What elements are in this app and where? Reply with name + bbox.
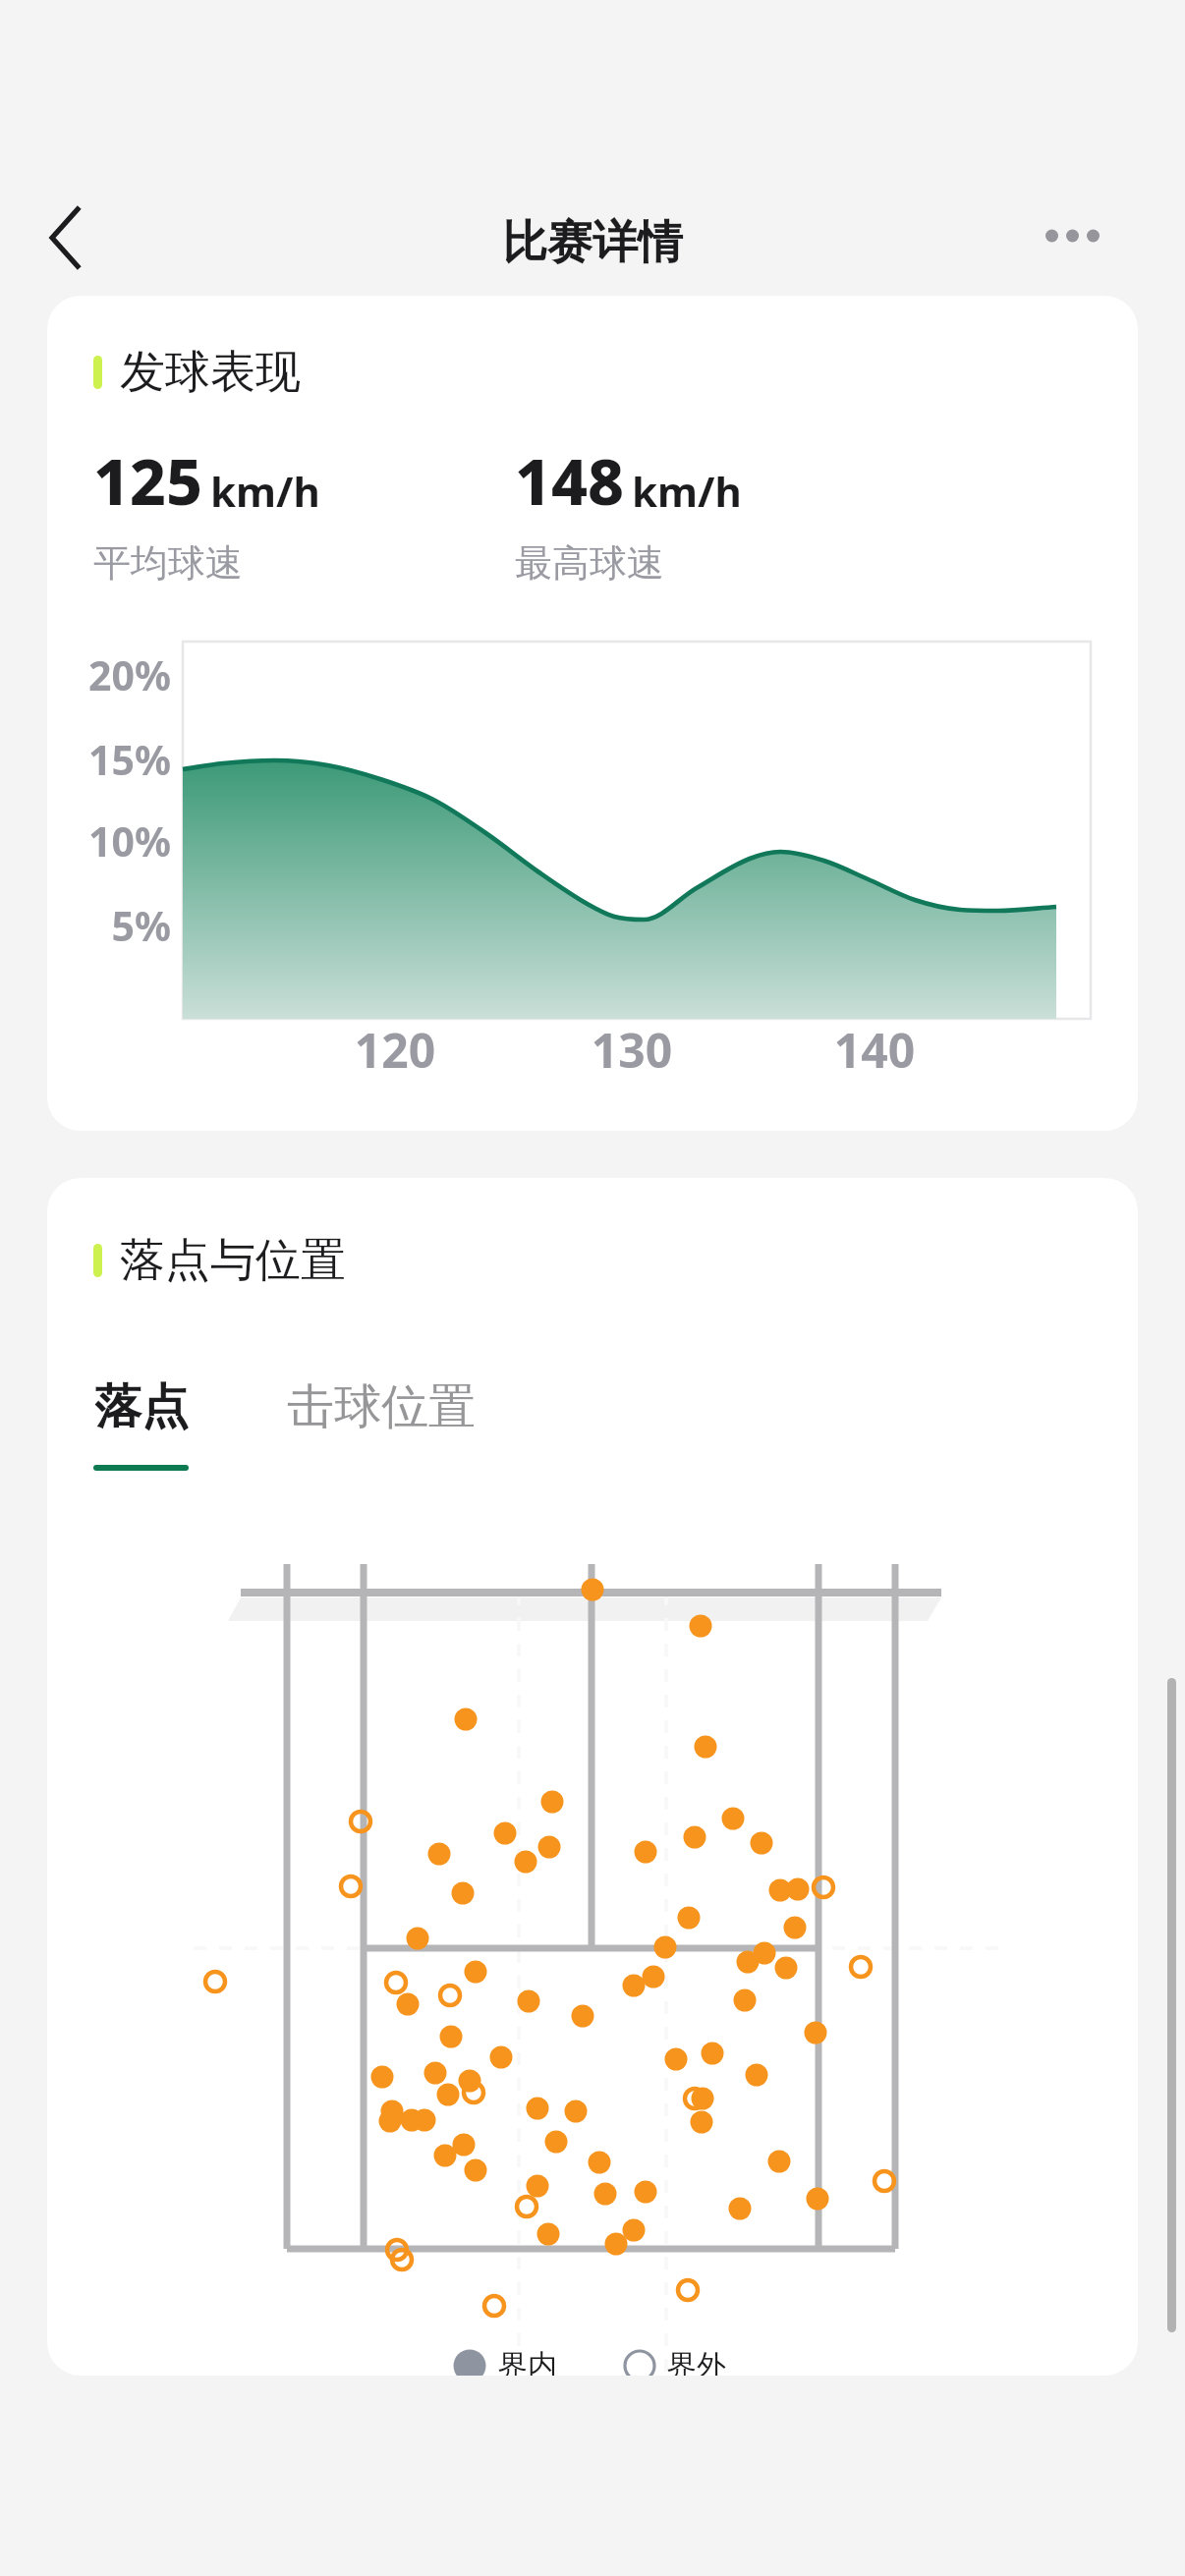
staticText: km/h — [210, 463, 320, 519]
staticText: 20% — [75, 647, 171, 702]
button[interactable]: 落点 — [93, 1377, 189, 1471]
staticText: 125 — [93, 438, 202, 524]
staticText: 5% — [75, 898, 171, 953]
button[interactable]: 击球位置 — [287, 1377, 476, 1465]
staticText: 148 — [515, 438, 624, 524]
staticText: 130 — [563, 1018, 701, 1082]
button[interactable]: Back — [16, 189, 114, 287]
staticText: 比赛详情 — [502, 214, 683, 271]
staticText: 击球位置 — [287, 1377, 476, 1436]
button[interactable]: More options — [1023, 187, 1121, 285]
staticText: 10% — [75, 813, 171, 868]
staticText: km/h — [632, 463, 742, 519]
staticText: 平均球速 — [93, 539, 243, 587]
staticText: 120 — [326, 1018, 464, 1082]
staticText: 发球表现 — [120, 344, 301, 401]
staticText: 界外 — [667, 2347, 726, 2376]
staticText: 140 — [806, 1018, 943, 1082]
staticText: 15% — [75, 732, 171, 787]
staticText: 落点 — [94, 1377, 189, 1436]
staticText: 界内 — [498, 2347, 557, 2376]
staticText: 最高球速 — [515, 539, 664, 587]
staticText: 落点与位置 — [120, 1232, 346, 1289]
